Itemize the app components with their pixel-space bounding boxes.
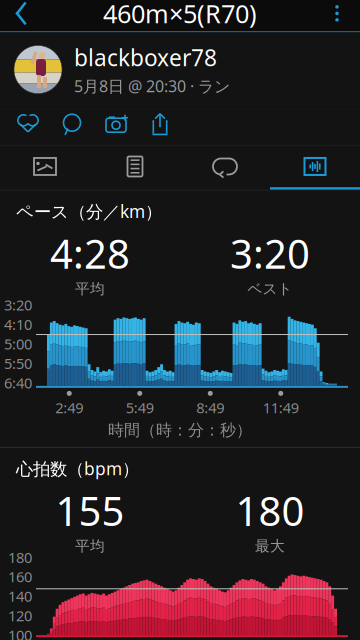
staticText: 155 (55, 484, 124, 537)
button[interactable]: Details (90, 146, 180, 190)
staticText: 180 (8, 547, 32, 567)
staticText: blackboxer78 (74, 42, 217, 72)
staticText: 460m×5(R70) (103, 0, 257, 30)
staticText: 5:00 (4, 334, 32, 354)
button[interactable]: Charts (270, 146, 360, 190)
staticText: ペース（分／km） (16, 200, 162, 223)
staticText: 平均 (75, 537, 105, 555)
staticText: ベスト (247, 280, 292, 298)
button[interactable]: Back (0, 0, 42, 32)
button[interactable]: Share (138, 107, 182, 141)
staticText: 3:20 (230, 227, 310, 280)
staticText: 心拍数（bpm） (16, 457, 139, 480)
staticText: 5:50 (4, 354, 32, 373)
staticText: 180 (235, 484, 304, 537)
staticText: 5月8日 @ 20:30 · ラン (74, 75, 230, 97)
button[interactable]: Comment (50, 107, 94, 141)
staticText: 140 (8, 586, 32, 606)
button[interactable]: blackboxer78 (0, 32, 360, 107)
staticText: 時間（時：分：秒） (108, 420, 252, 440)
staticText: 最大 (255, 537, 285, 555)
staticText: 6:40 (4, 373, 32, 393)
staticText: 11:49 (263, 398, 299, 417)
staticText: 5:49 (126, 398, 154, 417)
staticText: 平均 (75, 280, 105, 298)
button[interactable]: Like (6, 107, 50, 141)
button[interactable]: Add photo (94, 107, 138, 141)
staticText: 8:49 (196, 398, 224, 417)
button[interactable]: More options (314, 0, 360, 32)
button[interactable]: Laps (180, 146, 270, 190)
staticText: 2:49 (55, 398, 83, 417)
staticText: 3:20 (4, 295, 32, 315)
staticText: 120 (8, 606, 32, 625)
staticText: 4:10 (4, 315, 32, 334)
staticText: 100 (8, 625, 32, 640)
staticText: 160 (8, 567, 32, 586)
button[interactable]: Map (0, 146, 90, 190)
staticText: 4:28 (50, 227, 130, 280)
